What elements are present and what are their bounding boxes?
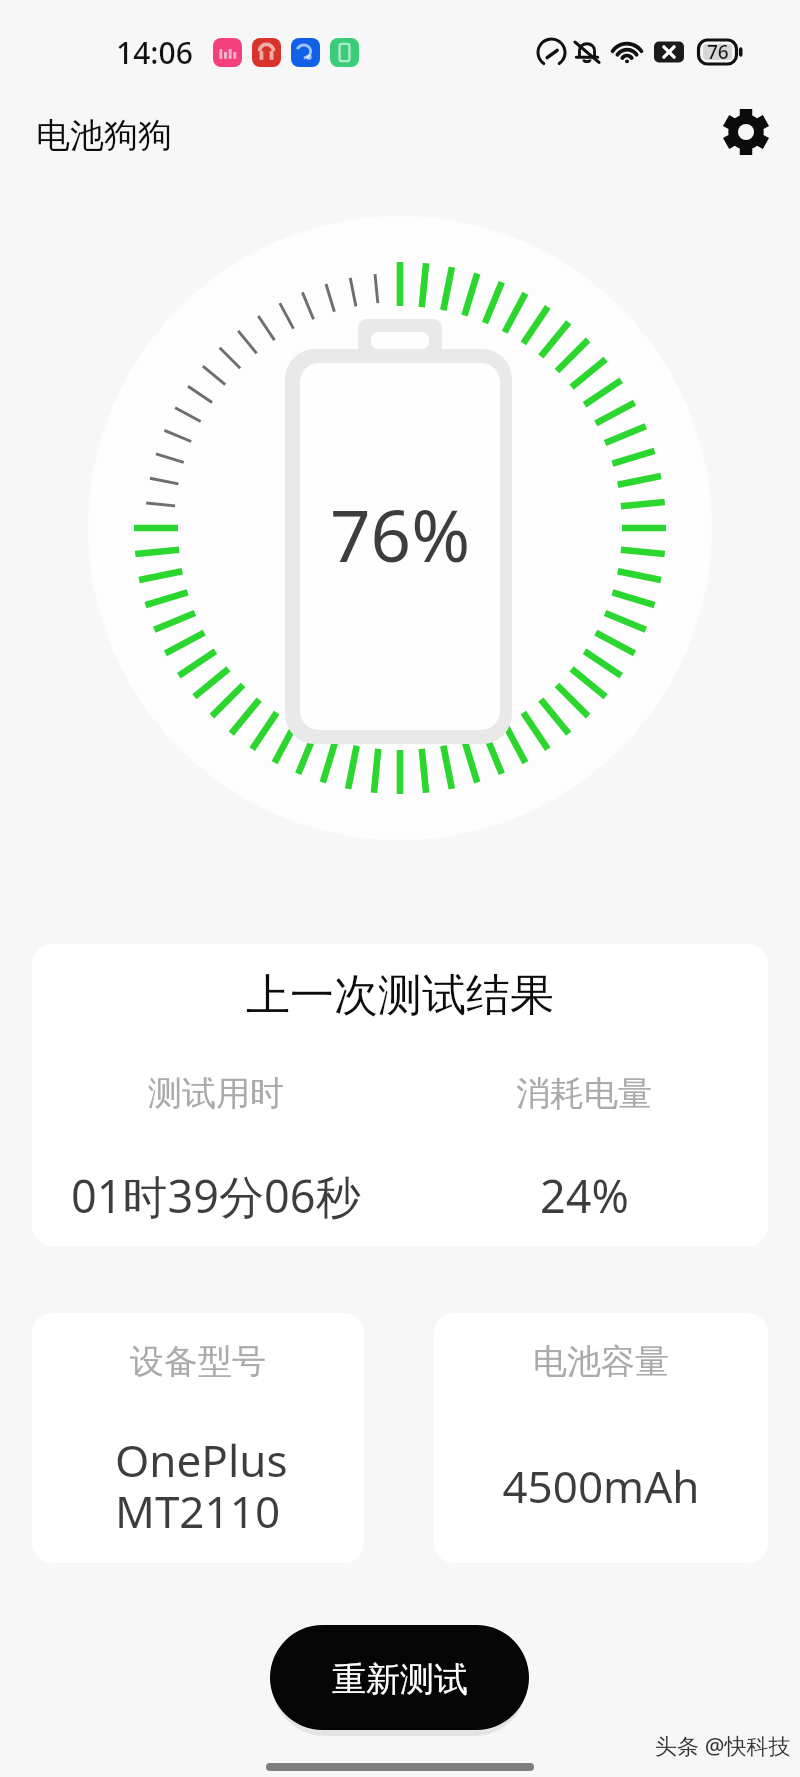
staticText: 14:06 [116,32,193,73]
staticText: 上一次测试结果 [32,968,768,1023]
button[interactable]: 电池容量 [434,1313,768,1563]
button[interactable]: 重新测试 [270,1625,529,1730]
staticText: 76 [707,39,729,65]
staticText: 设备型号 [130,1340,266,1383]
staticText: OnePlus [115,1430,288,1490]
staticText: 76% [330,486,471,583]
staticText: 测试用时 [148,1072,284,1115]
staticText: 电池容量 [434,1340,768,1383]
staticText: MT2110 [115,1481,281,1541]
staticText: 重新测试 [332,1658,468,1701]
button[interactable]: Settings [718,104,774,160]
staticText: 头条 @快科技 [655,1730,791,1760]
button[interactable]: 上一次测试结果 [32,944,768,1246]
staticText: 电池狗狗 [36,114,172,157]
staticText: 01时39分06秒 [71,1165,361,1226]
staticText: 消耗电量 [516,1072,652,1115]
staticText: 4500mAh [434,1456,768,1516]
staticText: 24% [540,1165,629,1226]
button[interactable]: 设备型号 [32,1313,364,1563]
